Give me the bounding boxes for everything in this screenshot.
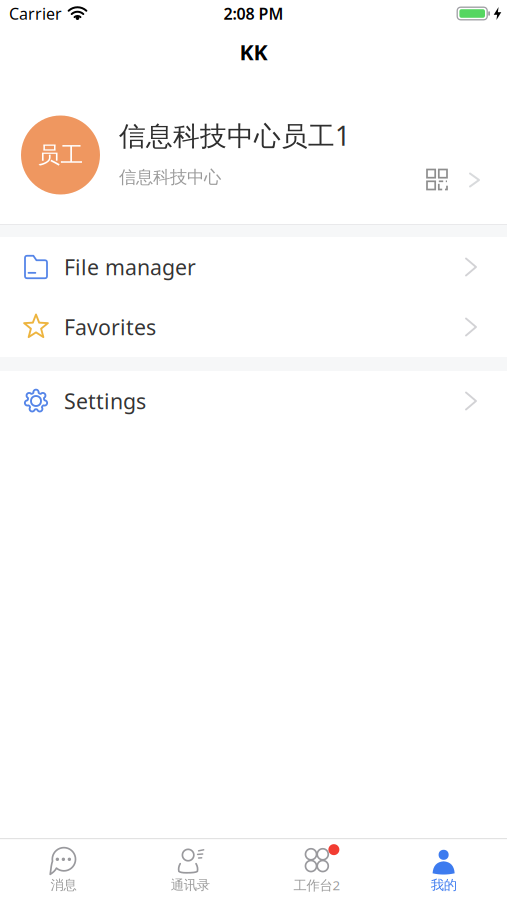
staticText: 员工	[37, 141, 83, 169]
staticText: Favorites	[64, 313, 156, 341]
staticText: 消息	[50, 877, 76, 893]
staticText: 通讯录	[171, 877, 210, 893]
button[interactable]: 员工	[0, 86, 507, 224]
button[interactable]: 工作台2	[253, 847, 380, 894]
staticText: 我的	[431, 877, 457, 893]
button[interactable]: Settings	[0, 371, 507, 431]
staticText: Carrier	[9, 3, 62, 24]
staticText: 2:08 PM	[223, 3, 283, 24]
button[interactable]: 通讯录	[127, 848, 254, 893]
button[interactable]: 消息	[0, 848, 127, 893]
staticText: Settings	[64, 387, 146, 415]
staticText: 工作台2	[293, 876, 340, 894]
staticText: KK	[239, 38, 267, 66]
button[interactable]: File manager	[0, 237, 507, 297]
staticText: 信息科技中心	[119, 167, 221, 188]
button[interactable]: 我的	[380, 848, 507, 893]
button[interactable]: Favorites	[0, 297, 507, 357]
staticText: 信息科技中心员工1	[119, 118, 350, 153]
staticText: File manager	[64, 253, 196, 281]
